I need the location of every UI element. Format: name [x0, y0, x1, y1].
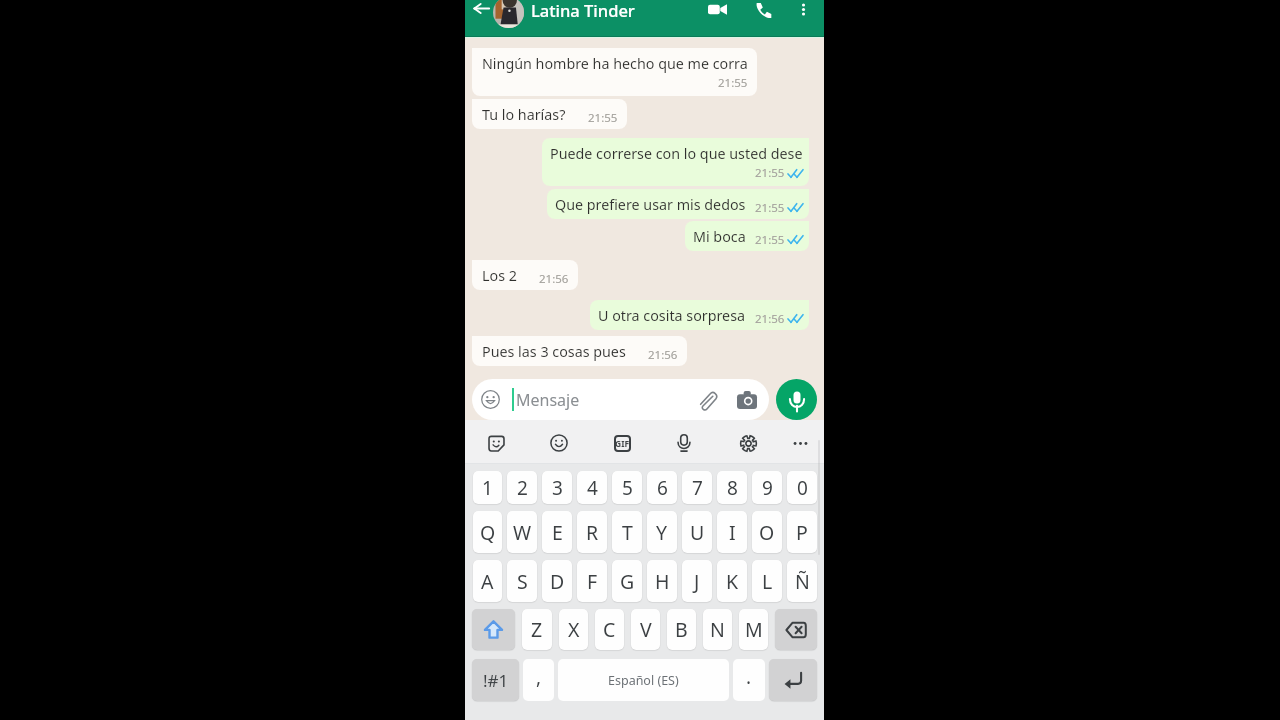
button[interactable]: More options [790, 0, 816, 22]
button[interactable]: Z [522, 609, 552, 650]
staticText: Tu lo harías? [482, 105, 566, 124]
button[interactable]: V [631, 609, 660, 650]
button[interactable]: 2 [507, 471, 537, 504]
button[interactable]: Mi boca [685, 221, 809, 251]
button[interactable]: 1 [473, 471, 502, 504]
staticText: C [603, 616, 616, 643]
button[interactable]: 9 [752, 471, 782, 504]
button[interactable]: Back [468, 0, 494, 21]
button[interactable]: Contact photo [493, 0, 524, 28]
button[interactable]: W [507, 511, 537, 553]
staticText: . [746, 664, 752, 690]
button[interactable]: Stickers [480, 427, 512, 459]
staticText: L [762, 568, 773, 595]
button[interactable]: Los 2 [472, 260, 578, 290]
staticText: 9 [762, 475, 773, 501]
button[interactable]: Español (ES) [558, 659, 729, 701]
staticText: Z [531, 616, 543, 643]
button[interactable]: . [733, 659, 765, 701]
button[interactable]: R [577, 511, 607, 553]
button[interactable]: !#1 [472, 659, 519, 701]
button[interactable]: 4 [577, 471, 607, 504]
staticText: 7 [692, 475, 703, 501]
staticText: Ningún hombre ha hecho que me corra [482, 54, 748, 73]
button[interactable]: 8 [717, 471, 747, 504]
button[interactable]: K [717, 560, 747, 602]
staticText: 21:55 [588, 110, 618, 126]
staticText: Que prefiere usar mis dedos [555, 195, 746, 214]
button[interactable]: Latina Tinder [531, 0, 635, 24]
button[interactable]: J [682, 560, 712, 602]
staticText: 21:55 [755, 200, 785, 216]
button[interactable]: More [784, 427, 816, 459]
button[interactable]: Video call [703, 0, 731, 23]
staticText: P [796, 519, 808, 546]
button[interactable]: B [667, 609, 696, 650]
button[interactable]: GIF [606, 427, 638, 459]
staticText: U otra cosita sorpresa [598, 306, 746, 325]
button[interactable]: Emoji [543, 427, 575, 459]
button[interactable]: Puede correrse con lo que usted dese [542, 138, 809, 186]
staticText: Mensaje [516, 389, 580, 411]
button[interactable]: P [787, 511, 817, 553]
button[interactable]: L [752, 560, 782, 602]
button[interactable]: G [612, 560, 642, 602]
button[interactable]: Que prefiere usar mis dedos [547, 189, 809, 219]
button[interactable]: Enter [769, 659, 817, 701]
staticText: 0 [797, 475, 808, 501]
button[interactable]: E [542, 511, 572, 553]
button[interactable]: F [577, 560, 607, 602]
button[interactable]: 5 [612, 471, 642, 504]
button[interactable]: A [473, 560, 502, 602]
staticText: V [640, 616, 652, 643]
button[interactable]: Voice message [776, 379, 817, 420]
button[interactable]: , [523, 659, 554, 701]
button[interactable]: Camera [734, 387, 760, 413]
button[interactable]: U otra cosita sorpresa [590, 300, 809, 330]
button[interactable]: 7 [682, 471, 712, 504]
staticText: F [587, 568, 598, 595]
staticText: H [655, 568, 670, 595]
button[interactable]: T [612, 511, 642, 553]
button[interactable]: X [559, 609, 588, 650]
button[interactable]: D [542, 560, 572, 602]
staticText: 21:56 [755, 311, 785, 327]
staticText: 21:55 [755, 232, 785, 248]
staticText: 1 [482, 475, 493, 501]
button[interactable]: Mensaje [472, 379, 769, 420]
button[interactable]: Settings [732, 427, 764, 459]
button[interactable]: Attach [693, 387, 719, 413]
button[interactable]: Ningún hombre ha hecho que me corra [472, 48, 757, 96]
button[interactable]: H [647, 560, 677, 602]
staticText: R [586, 519, 599, 546]
button[interactable]: I [717, 511, 747, 553]
staticText: N [710, 616, 725, 643]
button[interactable]: O [752, 511, 782, 553]
button[interactable]: Q [473, 511, 502, 553]
button[interactable]: Tu lo harías? [472, 99, 627, 129]
button[interactable]: Pues las 3 cosas pues [472, 336, 687, 366]
button[interactable]: C [595, 609, 624, 650]
button[interactable]: N [703, 609, 732, 650]
staticText: Puede correrse con lo que usted dese [550, 144, 803, 163]
staticText: Y [656, 519, 668, 546]
button[interactable]: U [682, 511, 712, 553]
staticText: Latina Tinder [531, 0, 635, 21]
staticText: D [550, 568, 565, 595]
button[interactable]: 6 [647, 471, 677, 504]
button[interactable]: Y [647, 511, 677, 553]
button[interactable]: 3 [542, 471, 572, 504]
staticText: 3 [552, 475, 563, 501]
button[interactable]: Backspace [775, 609, 817, 650]
button[interactable]: Shift [472, 609, 515, 650]
button[interactable]: Voice input [668, 427, 700, 459]
button[interactable]: S [507, 560, 537, 602]
staticText: 6 [657, 475, 668, 501]
staticText: Español (ES) [608, 672, 679, 689]
button[interactable]: Ñ [787, 560, 817, 602]
staticText: O [759, 519, 775, 546]
staticText: 2 [517, 475, 528, 501]
button[interactable]: Call [749, 0, 777, 24]
button[interactable]: M [739, 609, 768, 650]
button[interactable]: 0 [787, 471, 817, 504]
